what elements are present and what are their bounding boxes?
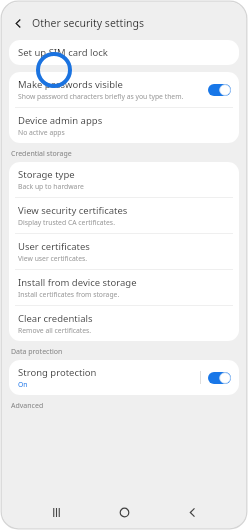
staticText: Clear credentials bbox=[18, 312, 93, 325]
button[interactable]: Recent apps bbox=[42, 500, 70, 525]
staticText: Data protection bbox=[11, 347, 63, 357]
staticText: Storage type bbox=[18, 168, 75, 181]
staticText: View security certificates bbox=[18, 204, 128, 217]
staticText: On bbox=[18, 380, 28, 389]
staticText: Install certificates from storage. bbox=[18, 290, 120, 299]
button[interactable]: Install from device storage bbox=[9, 270, 239, 305]
button[interactable]: View security certificates bbox=[9, 198, 239, 233]
button[interactable]: Home bbox=[110, 500, 138, 525]
button[interactable]: Device admin apps bbox=[9, 108, 239, 143]
staticText: Device admin apps bbox=[18, 114, 103, 127]
staticText: Strong protection bbox=[18, 366, 97, 379]
staticText: Credential storage bbox=[11, 149, 72, 159]
button[interactable]: Strong protection bbox=[9, 360, 239, 395]
button[interactable]: Back bbox=[178, 500, 206, 525]
staticText: Install from device storage bbox=[18, 276, 137, 289]
staticText: No active apps bbox=[18, 128, 65, 137]
staticText: User certificates bbox=[18, 240, 90, 253]
button[interactable]: Toggle setting bbox=[208, 84, 231, 96]
staticText: View user certificates. bbox=[18, 254, 88, 263]
button[interactable]: Set up SIM card lock bbox=[9, 40, 239, 65]
button[interactable]: Storage type bbox=[9, 162, 239, 197]
staticText: Set up SIM card lock bbox=[18, 46, 108, 59]
button[interactable]: User certificates bbox=[9, 234, 239, 269]
staticText: Display trusted CA certificates. bbox=[18, 218, 115, 227]
staticText: Back up to hardware bbox=[18, 182, 84, 191]
button[interactable]: Clear credentials bbox=[9, 306, 239, 341]
staticText: Make passwords visible bbox=[18, 78, 123, 91]
button[interactable]: Toggle setting bbox=[208, 372, 231, 384]
staticText: Other security settings bbox=[32, 16, 145, 30]
staticText: Advanced bbox=[11, 401, 44, 411]
staticText: Show password characters briefly as you … bbox=[18, 92, 184, 101]
button[interactable]: Navigate up bbox=[11, 16, 25, 30]
button[interactable]: Make passwords visible bbox=[9, 72, 239, 107]
staticText: Remove all certificates. bbox=[18, 326, 92, 335]
